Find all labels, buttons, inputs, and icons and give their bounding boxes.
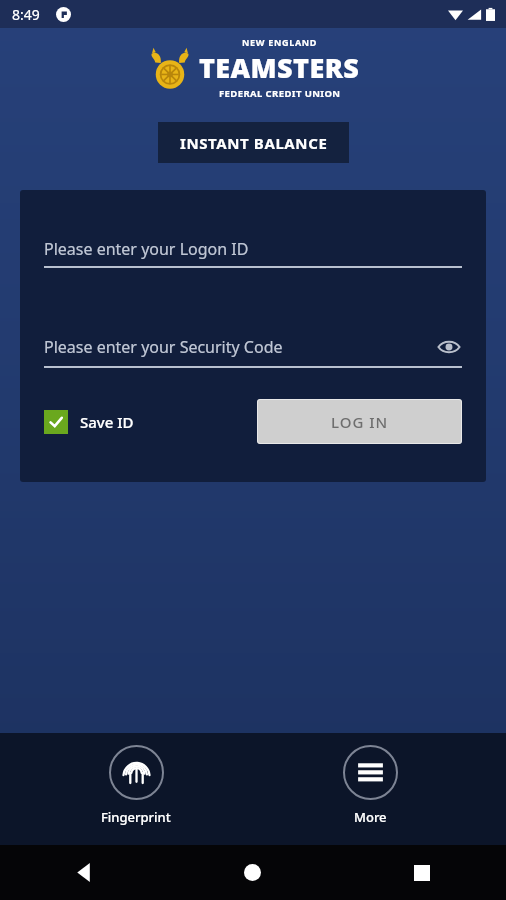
button[interactable]: Recent apps [337,845,506,900]
button[interactable]: Fingerprint [60,745,212,826]
staticText: Save ID [80,412,134,432]
button[interactable]: Back [0,845,168,900]
button[interactable]: Please enter your Security Code [44,334,462,368]
button[interactable]: INSTANT BALANCE [158,122,349,163]
button[interactable]: Save ID [44,410,134,434]
button[interactable]: More [294,745,446,826]
staticText: LOG IN [331,412,389,432]
staticText: INSTANT BALANCE [180,133,328,153]
staticText: Please enter your Security Code [44,336,283,358]
staticText: Fingerprint [101,808,171,826]
staticText: 8:49 [12,5,40,24]
staticText: TEAMSTERS [199,49,360,86]
staticText: More [354,808,387,826]
button[interactable]: Please enter your Logon ID [44,238,462,268]
button[interactable]: Home [168,845,337,900]
button[interactable]: LOG IN [257,399,462,444]
staticText: NEW ENGLAND [242,36,318,48]
staticText: Please enter your Logon ID [44,238,249,260]
button[interactable]: Show password [436,334,462,360]
staticText: FEDERAL CREDIT UNION [219,87,341,100]
